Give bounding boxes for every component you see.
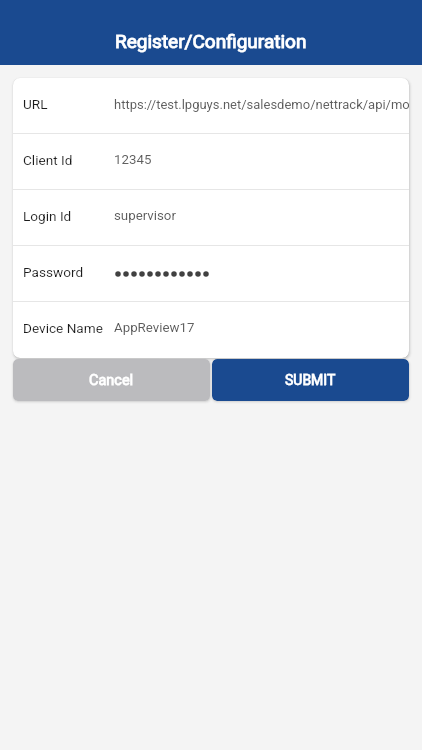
staticText: Login Id: [23, 208, 114, 224]
button[interactable]: Device Name: [13, 302, 409, 358]
staticText: URL: [23, 96, 114, 112]
staticText: Device Name: [23, 320, 114, 336]
staticText: https://test.lpguys.net/salesdemo/nettra…: [114, 97, 409, 112]
staticText: Password: [23, 264, 114, 280]
other: Password field: [114, 270, 210, 278]
staticText: Register/Configuration: [115, 30, 307, 52]
button[interactable]: URL: [13, 78, 409, 134]
staticText: SUBMIT: [285, 372, 336, 388]
button[interactable]: Cancel: [13, 359, 210, 401]
button[interactable]: Login Id: [13, 190, 409, 246]
staticText: Client Id: [23, 152, 114, 168]
button[interactable]: Password: [13, 246, 409, 302]
staticText: AppReview17: [114, 320, 195, 336]
button[interactable]: Client Id: [13, 134, 409, 190]
staticText: Cancel: [89, 372, 134, 389]
staticText: supervisor: [114, 208, 176, 224]
button[interactable]: SUBMIT: [212, 359, 409, 401]
staticText: 12345: [114, 152, 152, 168]
